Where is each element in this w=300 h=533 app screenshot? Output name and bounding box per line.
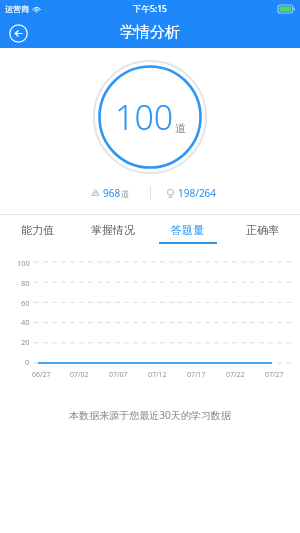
staticText: 07/02 <box>70 370 89 380</box>
button[interactable]: 正确率 <box>225 215 300 244</box>
staticText: 07/07 <box>109 370 128 380</box>
staticText: 60 <box>21 298 30 308</box>
staticText: 198/264 <box>178 186 217 200</box>
staticText: 07/22 <box>226 370 245 380</box>
staticText: 07/12 <box>148 370 167 380</box>
staticText: 能力值 <box>21 223 54 237</box>
staticText: 正确率 <box>246 223 279 237</box>
staticText: 06/27 <box>32 370 51 380</box>
button[interactable]: Back <box>6 21 30 45</box>
staticText: 20 <box>21 337 30 347</box>
staticText: 100 <box>115 94 174 140</box>
staticText: 道 <box>175 121 186 135</box>
staticText: 掌握情况 <box>91 223 135 237</box>
staticText: 学情分析 <box>120 23 180 42</box>
staticText: 100 <box>17 258 30 268</box>
staticText: 道 <box>121 189 130 200</box>
staticText: 0 <box>25 357 30 367</box>
staticText: 下午5:15 <box>133 3 167 15</box>
button[interactable]: 掌握情况 <box>75 215 150 244</box>
staticText: 80 <box>21 278 30 288</box>
staticText: 968 <box>103 186 121 200</box>
staticText: 07/17 <box>187 370 206 380</box>
button[interactable]: 能力值 <box>0 215 75 244</box>
staticText: 运营商 <box>5 4 29 14</box>
staticText: 07/27 <box>265 370 284 380</box>
staticText: 答题量 <box>171 223 204 237</box>
staticText: 40 <box>21 317 30 327</box>
button[interactable]: 答题量 <box>150 215 225 244</box>
staticText: 本数据来源于您最近30天的学习数据 <box>0 408 300 422</box>
